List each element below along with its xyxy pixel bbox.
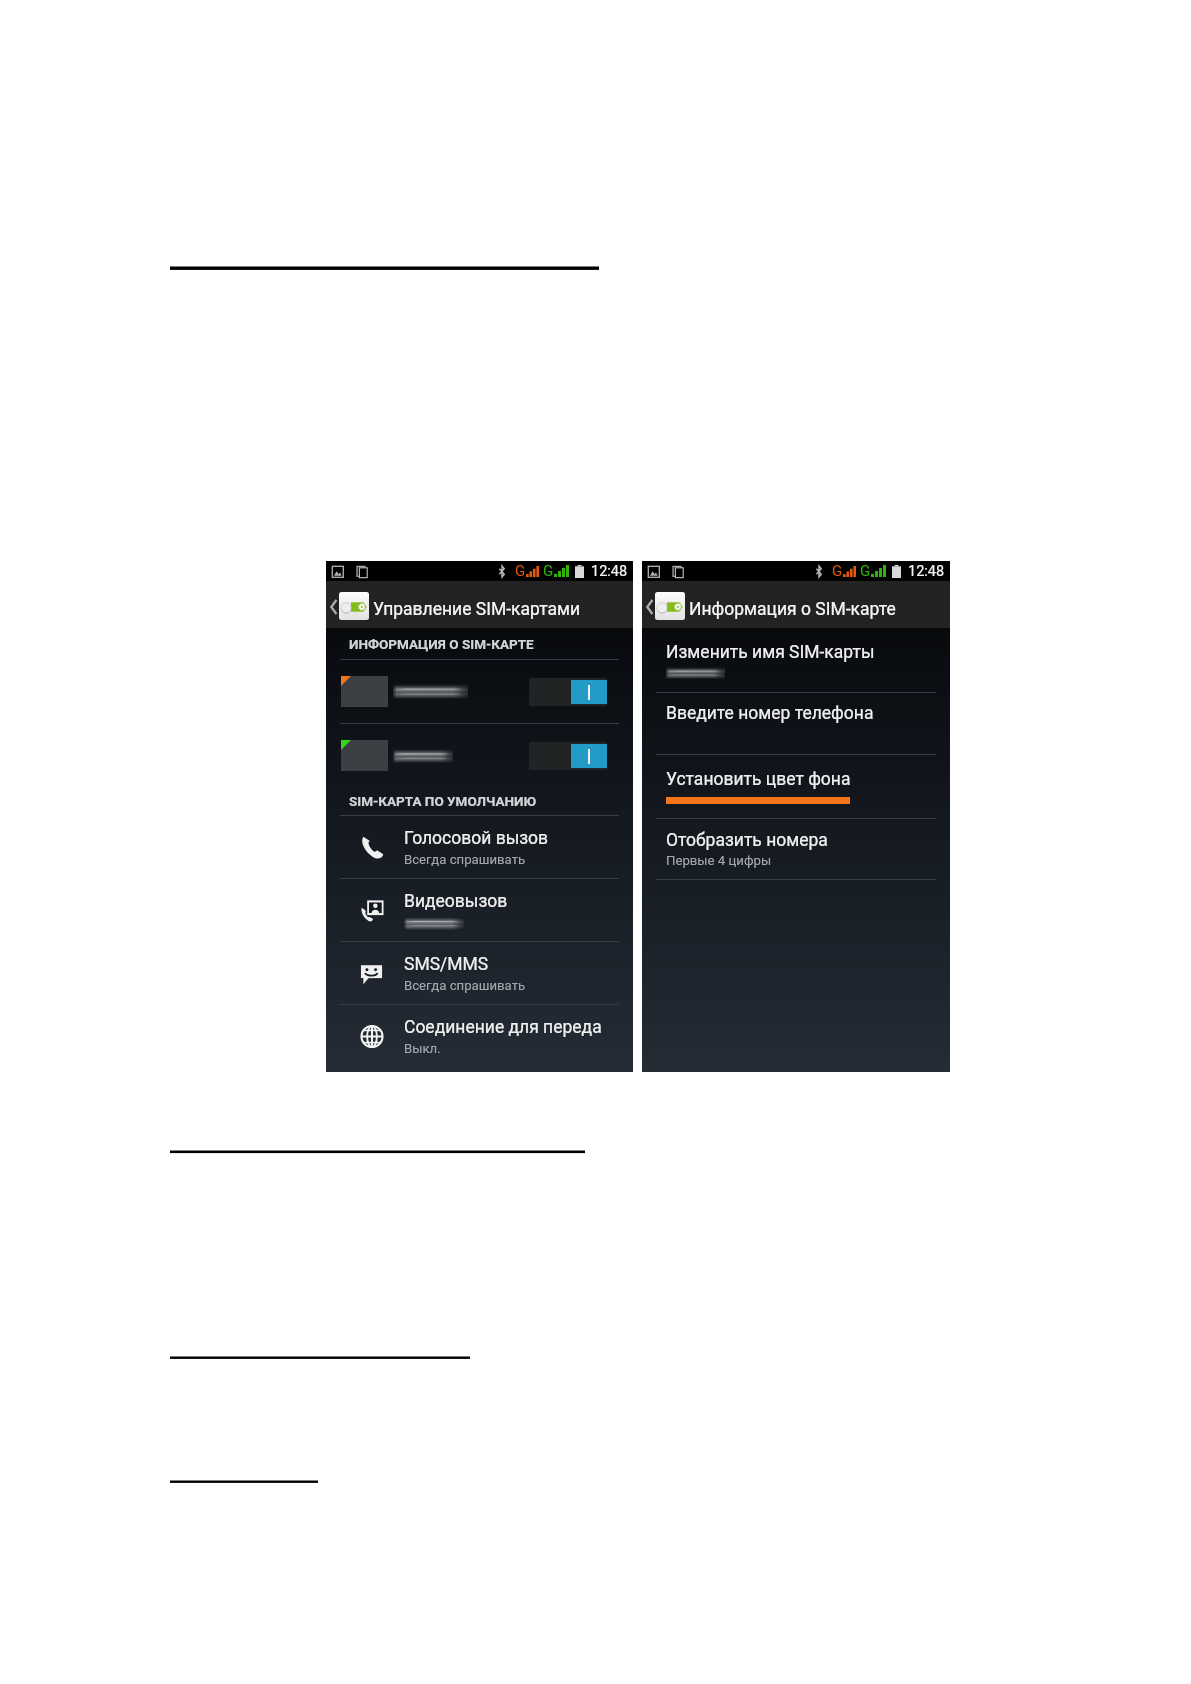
button[interactable]: Включить SIM [341,660,607,723]
staticText: Изменить имя SIM-карты [666,642,875,663]
staticText: 12:48 [591,563,628,580]
button[interactable]: Введите номер телефона [666,693,950,754]
button[interactable]: Видеовызов [354,879,623,941]
button[interactable]: Включить SIM [529,742,607,770]
staticText: G [832,562,843,580]
button[interactable]: Соединение для переда [354,1005,623,1067]
button[interactable]: Отобразить номера [666,819,950,879]
button[interactable]: Управление SIM-картами [326,581,633,628]
button[interactable]: Изменить имя SIM-карты [666,628,950,692]
staticText: Отобразить номера [666,830,828,851]
staticText: G [515,562,526,580]
staticText: Первые 4 цифры [666,853,772,868]
staticText: ИНФОРМАЦИЯ О SIM-КАРТЕ [349,636,534,652]
staticText: SIM-КАРТА ПО УМОЛЧАНИЮ [349,793,537,809]
button[interactable]: Голосовой вызов [354,816,623,878]
staticText: SMS/MMS [404,954,489,975]
staticText: Выкл. [404,1041,441,1056]
staticText: Всегда спрашивать [404,978,526,993]
button[interactable]: Информация о SIM-карте [642,581,950,628]
staticText: Управление SIM-картами [373,599,581,620]
staticText: Информация о SIM-карте [689,599,896,620]
staticText: Видеовызов [404,891,508,912]
staticText: 12:48 [908,563,945,580]
staticText: Установить цвет фона [666,769,851,790]
staticText: Соединение для переда [404,1017,602,1038]
staticText: Голосовой вызов [404,828,549,849]
button[interactable]: Включить SIM [341,724,607,787]
button[interactable]: Включить SIM [529,678,607,706]
staticText: Всегда спрашивать [404,852,526,867]
button[interactable]: Установить цвет фона [666,755,950,818]
staticText: G [543,562,554,580]
staticText: Введите номер телефона [666,703,874,724]
button[interactable]: SMS/MMS [354,942,623,1004]
staticText: G [860,562,871,580]
